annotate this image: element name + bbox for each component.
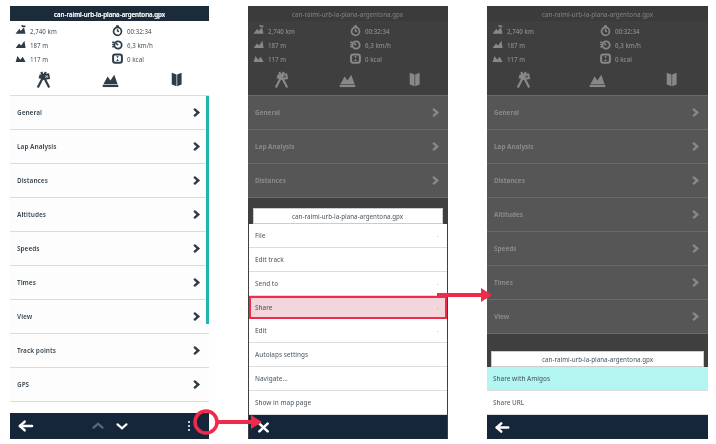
button[interactable]: More options — [181, 418, 197, 434]
staticText: Lap Analysis — [494, 142, 690, 151]
staticText: Navigate... — [255, 374, 288, 383]
staticText: View — [17, 312, 191, 321]
button[interactable]: Map — [634, 64, 708, 95]
button[interactable]: Chart — [77, 64, 143, 95]
staticText: 187 m — [268, 41, 287, 49]
button[interactable]: Share with Amigos — [487, 367, 708, 390]
button[interactable]: General — [487, 96, 708, 129]
staticText: · — [437, 327, 439, 335]
staticText: Send to — [255, 279, 279, 288]
staticText: Show in map page — [255, 398, 312, 407]
button[interactable]: Previous — [91, 419, 105, 433]
staticText: Share with Amigos — [493, 374, 551, 383]
staticText: can-raimi-urb-la-plana-argentona.gpx — [292, 10, 404, 18]
button[interactable]: Back — [495, 420, 510, 435]
staticText: 6,3 km/h — [615, 41, 641, 49]
staticText: 117 m — [507, 55, 526, 63]
button[interactable]: Laps — [10, 64, 77, 95]
staticText: 117 m — [268, 55, 287, 63]
button[interactable]: GPS — [10, 368, 209, 401]
staticText: can-raimi-urb-la-plana-argentona.gpx — [292, 212, 404, 220]
staticText: 00:32:34 — [127, 27, 152, 35]
staticText: View — [494, 312, 690, 321]
button[interactable]: Edit — [249, 319, 447, 342]
button[interactable]: General — [10, 96, 209, 129]
button[interactable]: Map — [143, 64, 209, 95]
staticText: Autolaps settings — [255, 350, 309, 359]
staticText: · — [437, 280, 439, 288]
button[interactable]: Speeds — [10, 232, 209, 265]
button[interactable]: Lap Analysis — [248, 130, 448, 163]
staticText: 2,740 km — [268, 27, 295, 35]
staticText: Edit track — [255, 255, 284, 264]
staticText: Distances — [255, 176, 430, 185]
staticText: General — [255, 108, 430, 117]
button[interactable]: Back — [18, 418, 34, 434]
button[interactable]: Altitudes — [487, 198, 708, 231]
staticText: Times — [17, 278, 191, 287]
staticText: GPS — [17, 380, 191, 389]
staticText: can-raimi-urb-la-plana-argentona.gpx — [542, 355, 654, 363]
staticText: Speeds — [17, 244, 191, 253]
staticText: can-raimi-urb-la-plana-argentona.gpx — [542, 10, 654, 18]
button[interactable]: Chart — [314, 64, 381, 95]
staticText: Distances — [494, 176, 690, 185]
staticText: 0 kcal — [127, 55, 144, 63]
staticText: Times — [494, 278, 690, 287]
staticText: 187 m — [30, 41, 49, 49]
staticText: Track points — [17, 346, 191, 355]
button[interactable]: Times — [10, 266, 209, 299]
button[interactable]: Times — [487, 266, 708, 299]
button[interactable]: Navigate... — [249, 367, 447, 390]
staticText: Distances — [17, 176, 191, 185]
staticText: Lap Analysis — [255, 142, 430, 151]
button[interactable]: Lap Analysis — [10, 130, 209, 163]
staticText: Lap Analysis — [17, 142, 191, 151]
button[interactable]: Altitudes — [10, 198, 209, 231]
staticText: File — [255, 231, 266, 240]
staticText: 6,3 km/h — [127, 41, 153, 49]
button[interactable]: Send to — [249, 272, 447, 295]
button[interactable]: General — [248, 96, 448, 129]
button[interactable]: View — [487, 300, 708, 333]
button[interactable]: Edit track — [249, 248, 447, 271]
button[interactable]: Close — [257, 421, 270, 434]
button[interactable]: Laps — [487, 64, 560, 95]
button[interactable]: Track points — [10, 334, 209, 367]
staticText: General — [17, 108, 191, 117]
button[interactable]: View — [10, 300, 209, 333]
button[interactable]: Distances — [487, 164, 708, 197]
button[interactable]: Show in map page — [249, 391, 447, 414]
staticText: General — [494, 108, 690, 117]
staticText: 00:32:34 — [365, 27, 390, 35]
button[interactable]: Distances — [10, 164, 209, 197]
button[interactable]: Share — [249, 296, 447, 319]
button[interactable]: Autolaps settings — [249, 343, 447, 366]
staticText: 187 m — [507, 41, 526, 49]
staticText: 2,740 km — [30, 27, 57, 35]
button[interactable]: Chart — [560, 64, 634, 95]
staticText: can-raimi-urb-la-plana-argentona.gpx — [54, 10, 166, 18]
staticText: Speeds — [494, 244, 690, 253]
button[interactable]: File — [249, 224, 447, 247]
staticText: 00:32:34 — [615, 27, 640, 35]
staticText: 0 kcal — [365, 55, 382, 63]
button[interactable]: Next — [115, 419, 129, 433]
staticText: Edit — [255, 326, 267, 335]
staticText: 2,740 km — [507, 27, 534, 35]
staticText: · — [437, 304, 439, 312]
staticText: Share — [255, 303, 273, 312]
staticText: Altitudes — [494, 210, 690, 219]
button[interactable]: Map — [381, 64, 448, 95]
staticText: 6,3 km/h — [365, 41, 391, 49]
staticText: · — [437, 232, 439, 240]
button[interactable]: Laps — [248, 64, 314, 95]
button[interactable]: Speeds — [487, 232, 708, 265]
button[interactable]: Distances — [248, 164, 448, 197]
staticText: Share URL — [493, 398, 525, 407]
staticText: Altitudes — [17, 210, 191, 219]
button[interactable]: Lap Analysis — [487, 130, 708, 163]
staticText: 117 m — [30, 55, 49, 63]
button[interactable]: Share URL — [487, 391, 708, 414]
staticText: 0 kcal — [615, 55, 632, 63]
